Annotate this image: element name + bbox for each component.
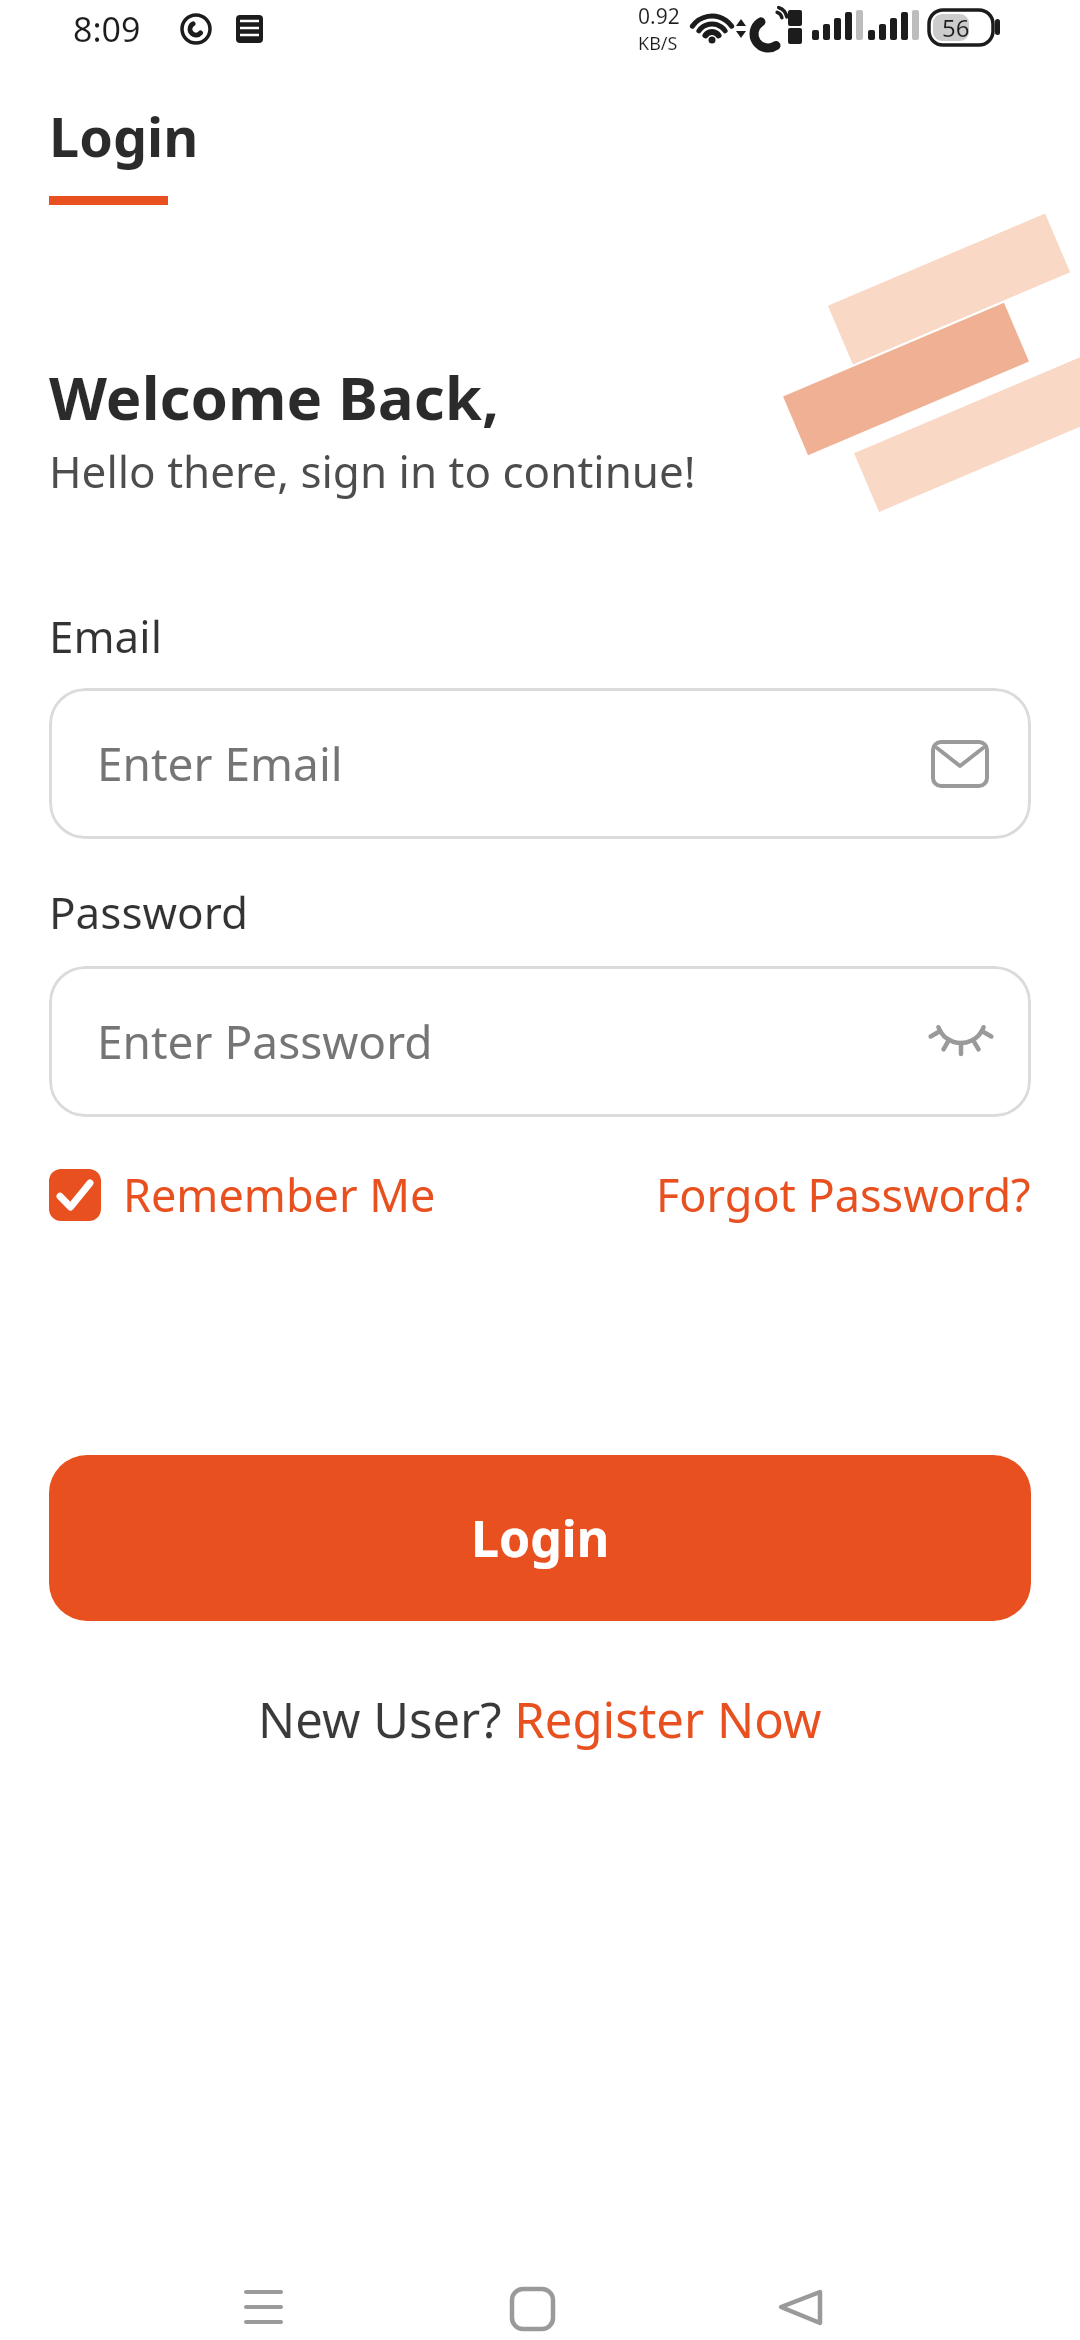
button[interactable]: Enter Email [49, 688, 1031, 839]
staticText: Welcome Back, [49, 356, 499, 438]
staticText: Login [471, 1504, 610, 1572]
staticText: KB/S [638, 31, 678, 56]
staticText: Enter Password [97, 1010, 433, 1073]
staticText: Enter Email [97, 732, 343, 795]
button[interactable]: Login [49, 1455, 1031, 1621]
staticText: 56 [942, 11, 970, 44]
staticText: 8:09 [73, 6, 141, 52]
button[interactable]: Forgot Password? [656, 1164, 1031, 1225]
staticText: Email [49, 606, 162, 666]
staticText: Login [49, 99, 199, 173]
button[interactable]: Remember Me [49, 1164, 436, 1225]
button[interactable]: Enter Password [49, 966, 1031, 1117]
staticText: Password [49, 882, 249, 942]
staticText: 0.92 [638, 2, 680, 31]
staticText: Hello there, sign in to continue! [49, 441, 696, 501]
button[interactable]: New User? Register Now [258, 1686, 822, 1753]
staticText: Remember Me [123, 1164, 436, 1225]
